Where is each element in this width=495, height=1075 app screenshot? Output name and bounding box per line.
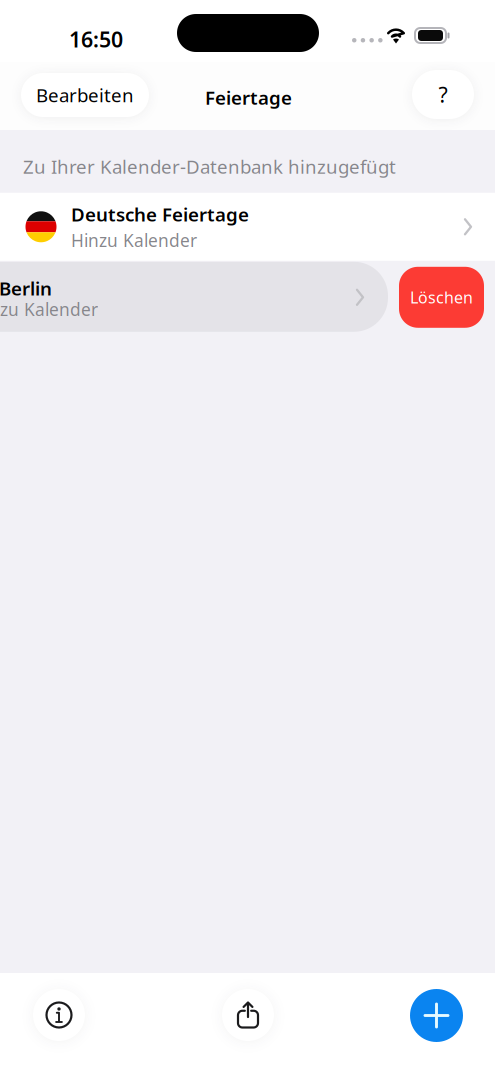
staticText: Bearbeiten bbox=[36, 83, 134, 107]
button[interactable]: Hinzufügen bbox=[410, 989, 463, 1042]
staticText: Hinzu Kalender bbox=[0, 298, 98, 321]
button[interactable]: Teilen bbox=[221, 989, 275, 1041]
staticText: Berlin bbox=[0, 276, 52, 301]
button[interactable]: Information bbox=[32, 989, 86, 1041]
button[interactable]: Löschen bbox=[399, 267, 484, 328]
staticText: Löschen bbox=[410, 287, 473, 308]
staticText: Deutsche Feiertage bbox=[71, 202, 249, 227]
button[interactable]: Bearbeiten bbox=[21, 73, 149, 117]
staticText: ? bbox=[438, 80, 447, 109]
staticText: 16:50 bbox=[69, 25, 123, 53]
staticText: Zu Ihrer Kalender-Datenbank hinzugefügt bbox=[23, 154, 396, 179]
staticText: Hinzu Kalender bbox=[71, 229, 197, 252]
staticText: Feiertage bbox=[205, 85, 292, 110]
button[interactable]: Hilfe bbox=[412, 70, 474, 119]
button[interactable]: Deutsche Feiertage bbox=[0, 193, 495, 261]
